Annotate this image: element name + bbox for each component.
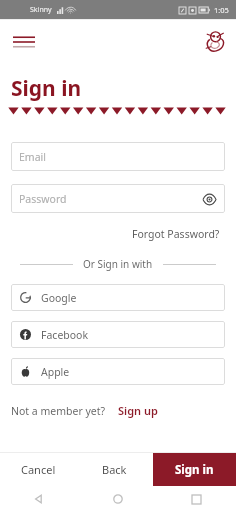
button[interactable]: Sign up [116, 400, 160, 421]
staticText: 1:05 [214, 5, 229, 15]
staticText: Apple [41, 365, 70, 379]
staticText: Password [19, 192, 67, 206]
button[interactable]: Google [11, 284, 225, 311]
button[interactable]: Home [78, 486, 157, 512]
staticText: Email [19, 150, 46, 164]
button[interactable]: Recent apps [157, 486, 236, 512]
button[interactable]: Email [11, 142, 225, 171]
button[interactable]: Forgot Password? [128, 223, 224, 245]
staticText: Or Sign in with [83, 257, 153, 271]
button[interactable]: Apple [11, 358, 225, 385]
button[interactable]: Back [76, 453, 153, 486]
button[interactable]: Back [0, 486, 78, 512]
staticText: Sign in [175, 462, 214, 478]
staticText: Sign up [118, 403, 158, 418]
button[interactable]: Facebook [11, 321, 225, 348]
button[interactable]: Show password [201, 191, 217, 207]
staticText: Facebook [41, 328, 89, 342]
staticText: Google [41, 291, 77, 305]
staticText: Sign in [11, 74, 82, 103]
button[interactable]: Menu [8, 26, 40, 58]
staticText: Skinny [30, 5, 52, 15]
button[interactable]: Cancel [0, 453, 76, 486]
button[interactable]: Password [11, 184, 225, 213]
staticText: Not a member yet? [11, 404, 106, 418]
staticText: Back [102, 462, 127, 477]
staticText: Forgot Password? [132, 227, 220, 241]
staticText: Cancel [21, 462, 56, 477]
button[interactable]: Sign in [153, 453, 236, 486]
button[interactable]: Logo [200, 27, 230, 57]
